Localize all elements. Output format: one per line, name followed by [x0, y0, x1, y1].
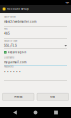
button[interactable]: Previous — [2, 93, 34, 100]
staticText: Password — [4, 65, 13, 68]
staticText: Next — [50, 95, 55, 98]
staticText: Previous — [14, 95, 22, 98]
staticText: SSL/TLS — [4, 44, 17, 47]
staticText: SMTP server — [4, 16, 16, 18]
button[interactable]: Require sign-in — [4, 49, 67, 56]
staticText: ▾▮▰ — [65, 1, 69, 4]
staticText: Port — [4, 28, 8, 30]
button[interactable]: Next — [37, 93, 68, 100]
button[interactable]: Recent apps — [50, 107, 61, 118]
staticText: Account setup — [7, 7, 29, 11]
staticText: Username — [4, 56, 14, 59]
staticText: 465 — [4, 32, 10, 35]
staticText: my@email.com — [4, 61, 26, 64]
staticText: • • • • • • — [4, 70, 21, 73]
button[interactable]: Back — [9, 107, 20, 118]
staticText: Security type — [4, 40, 17, 42]
staticText: mbsr37.webmailer.com — [4, 20, 36, 23]
staticText: Require sign-in — [8, 51, 26, 54]
button[interactable]: Home — [30, 107, 41, 118]
